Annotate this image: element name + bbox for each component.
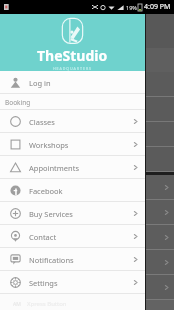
- button[interactable]: Log in: [0, 71, 145, 94]
- button[interactable]: Workshops: [0, 133, 145, 156]
- staticText: Buy Services: [29, 209, 73, 219]
- staticText: Workshops: [29, 140, 69, 150]
- staticText: Log in: [29, 78, 51, 88]
- staticText: AM: [13, 301, 21, 308]
- staticText: Booking: [5, 98, 31, 107]
- staticText: Appointments: [29, 163, 80, 173]
- button[interactable]: Contact: [0, 225, 145, 248]
- staticText: Facebook: [29, 186, 63, 196]
- button[interactable]: Buy Services: [0, 202, 145, 225]
- button[interactable]: Settings: [0, 271, 145, 294]
- button[interactable]: Notifications: [0, 248, 145, 271]
- staticText: Notifications: [29, 255, 74, 265]
- staticText: Contact: [29, 232, 57, 242]
- staticText: Xpress Button: [27, 300, 67, 308]
- button[interactable]: Classes: [0, 110, 145, 133]
- staticText: TheStudio: [37, 46, 108, 65]
- staticText: 19%: [126, 4, 137, 11]
- staticText: 4:09 PM: [144, 2, 171, 12]
- staticText: Settings: [29, 278, 58, 288]
- staticText: H E A D Q U A R T E R S: [53, 66, 92, 71]
- button[interactable]: Facebook: [0, 179, 145, 202]
- staticText: Classes: [29, 117, 55, 127]
- button[interactable]: Appointments: [0, 156, 145, 179]
